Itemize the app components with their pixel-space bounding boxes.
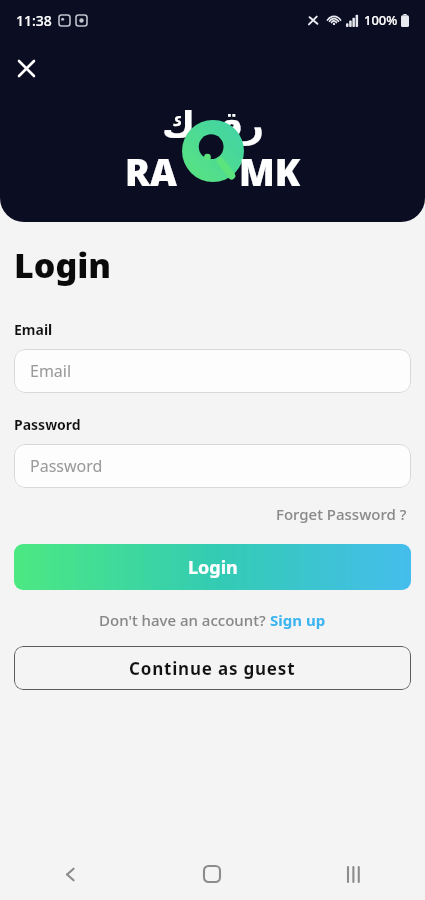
button[interactable]: Forget Password ? xyxy=(272,500,411,528)
button[interactable]: Recent apps xyxy=(283,848,425,900)
staticText: 100% xyxy=(364,11,398,29)
staticText: Password xyxy=(30,455,103,477)
staticText: Login xyxy=(14,242,112,288)
staticText: Login xyxy=(188,555,238,580)
button[interactable]: Login xyxy=(14,544,411,590)
staticText: RA xyxy=(125,146,177,196)
staticText: Continue as guest xyxy=(129,657,296,680)
button[interactable]: Email xyxy=(14,349,411,393)
button[interactable]: Close xyxy=(10,52,42,84)
button[interactable]: Back xyxy=(0,848,141,900)
staticText: Forget Password ? xyxy=(276,504,407,524)
staticText: 11:38 xyxy=(16,11,52,30)
staticText: Email xyxy=(14,320,53,339)
button[interactable]: Home xyxy=(141,848,283,900)
button[interactable]: Sign up xyxy=(270,610,326,630)
staticText: Password xyxy=(14,415,81,434)
staticText: Sign up xyxy=(270,610,326,630)
staticText: رقمك xyxy=(162,104,264,146)
staticText: Don't have an account? xyxy=(99,610,270,630)
staticText: MK xyxy=(239,146,301,196)
button[interactable]: Continue as guest xyxy=(14,646,411,690)
staticText: Email xyxy=(30,360,72,382)
button[interactable]: Password xyxy=(14,444,411,488)
